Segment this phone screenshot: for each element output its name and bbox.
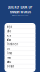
staticText: kirja [6,25,11,28]
button[interactable]: talo [4,29,35,33]
staticText: maa [6,56,10,59]
staticText: FINNISH WORDS [9,10,30,14]
staticText: aika [6,38,10,42]
staticText: QUICKLY LOOK UP [7,6,32,9]
staticText: tie [6,47,10,50]
staticText: vesi [6,34,11,37]
staticText: ilma [6,51,11,55]
button[interactable]: vesi [4,33,35,38]
button[interactable]: kirja [4,25,35,29]
button[interactable]: aika [4,38,35,42]
staticText: pöytä [6,64,13,68]
staticText: Dictionary for every day [11,15,28,16]
button[interactable]: Search [4,18,35,24]
button[interactable]: ilma [4,51,35,55]
staticText: ihminen [6,42,18,46]
button[interactable]: katu [4,60,35,64]
button[interactable]: pöytä [4,64,35,69]
button[interactable]: tie [4,47,35,51]
staticText: katu [6,60,11,64]
staticText: talo [6,29,11,33]
button[interactable]: maa [4,55,35,60]
button[interactable]: ihminen [4,42,35,47]
